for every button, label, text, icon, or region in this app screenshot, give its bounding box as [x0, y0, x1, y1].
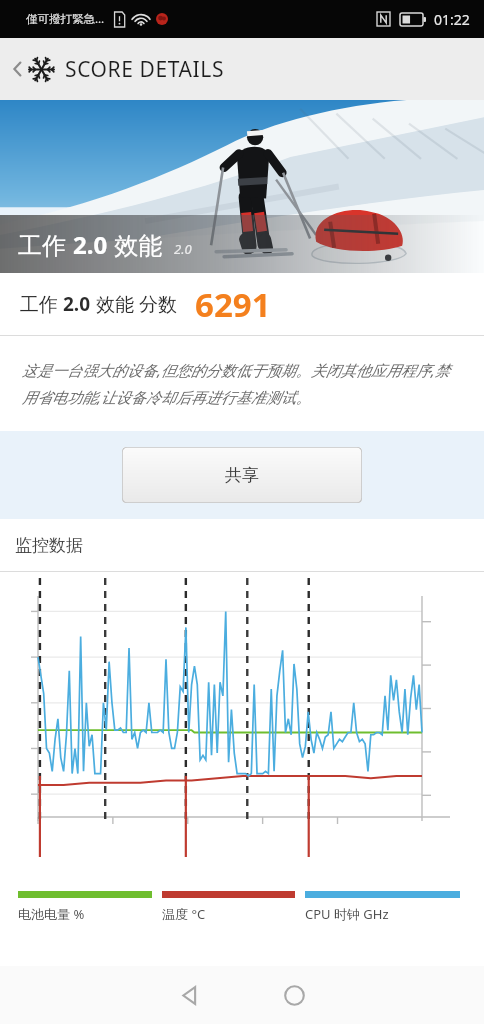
staticText: 效能 分数 — [91, 291, 177, 317]
staticText: 工作 — [20, 291, 63, 317]
button[interactable]: Home — [267, 968, 321, 1022]
staticText: SCORE DETAILS — [65, 55, 225, 84]
staticText: 工作 — [18, 228, 73, 261]
staticText: 2.0 — [73, 228, 108, 261]
staticText: 电池电量 % — [18, 905, 85, 923]
staticText: 温度 °C — [162, 905, 206, 923]
staticText: 6291 — [195, 282, 271, 327]
button[interactable]: Back — [163, 968, 217, 1022]
staticText: CPU 时钟 GHz — [305, 905, 389, 923]
staticText: 效能 — [108, 228, 163, 261]
staticText: 01:22 — [434, 10, 470, 29]
staticText: 共享 — [225, 465, 259, 486]
button[interactable]: 工作 — [0, 100, 484, 273]
staticText: 2.0 — [63, 291, 91, 317]
staticText: 监控数据 — [15, 535, 83, 556]
button[interactable]: Back — [0, 38, 484, 100]
button[interactable]: 共享 — [122, 447, 362, 503]
staticText: 僅可撥打緊急… — [26, 11, 105, 27]
other: Back — [8, 59, 28, 79]
staticText: 这是一台强大的设备,但您的分数低于预期。关闭其他应用程序,禁用省电功能,让设备冷… — [22, 360, 462, 408]
staticText: 2.0 — [174, 240, 192, 258]
